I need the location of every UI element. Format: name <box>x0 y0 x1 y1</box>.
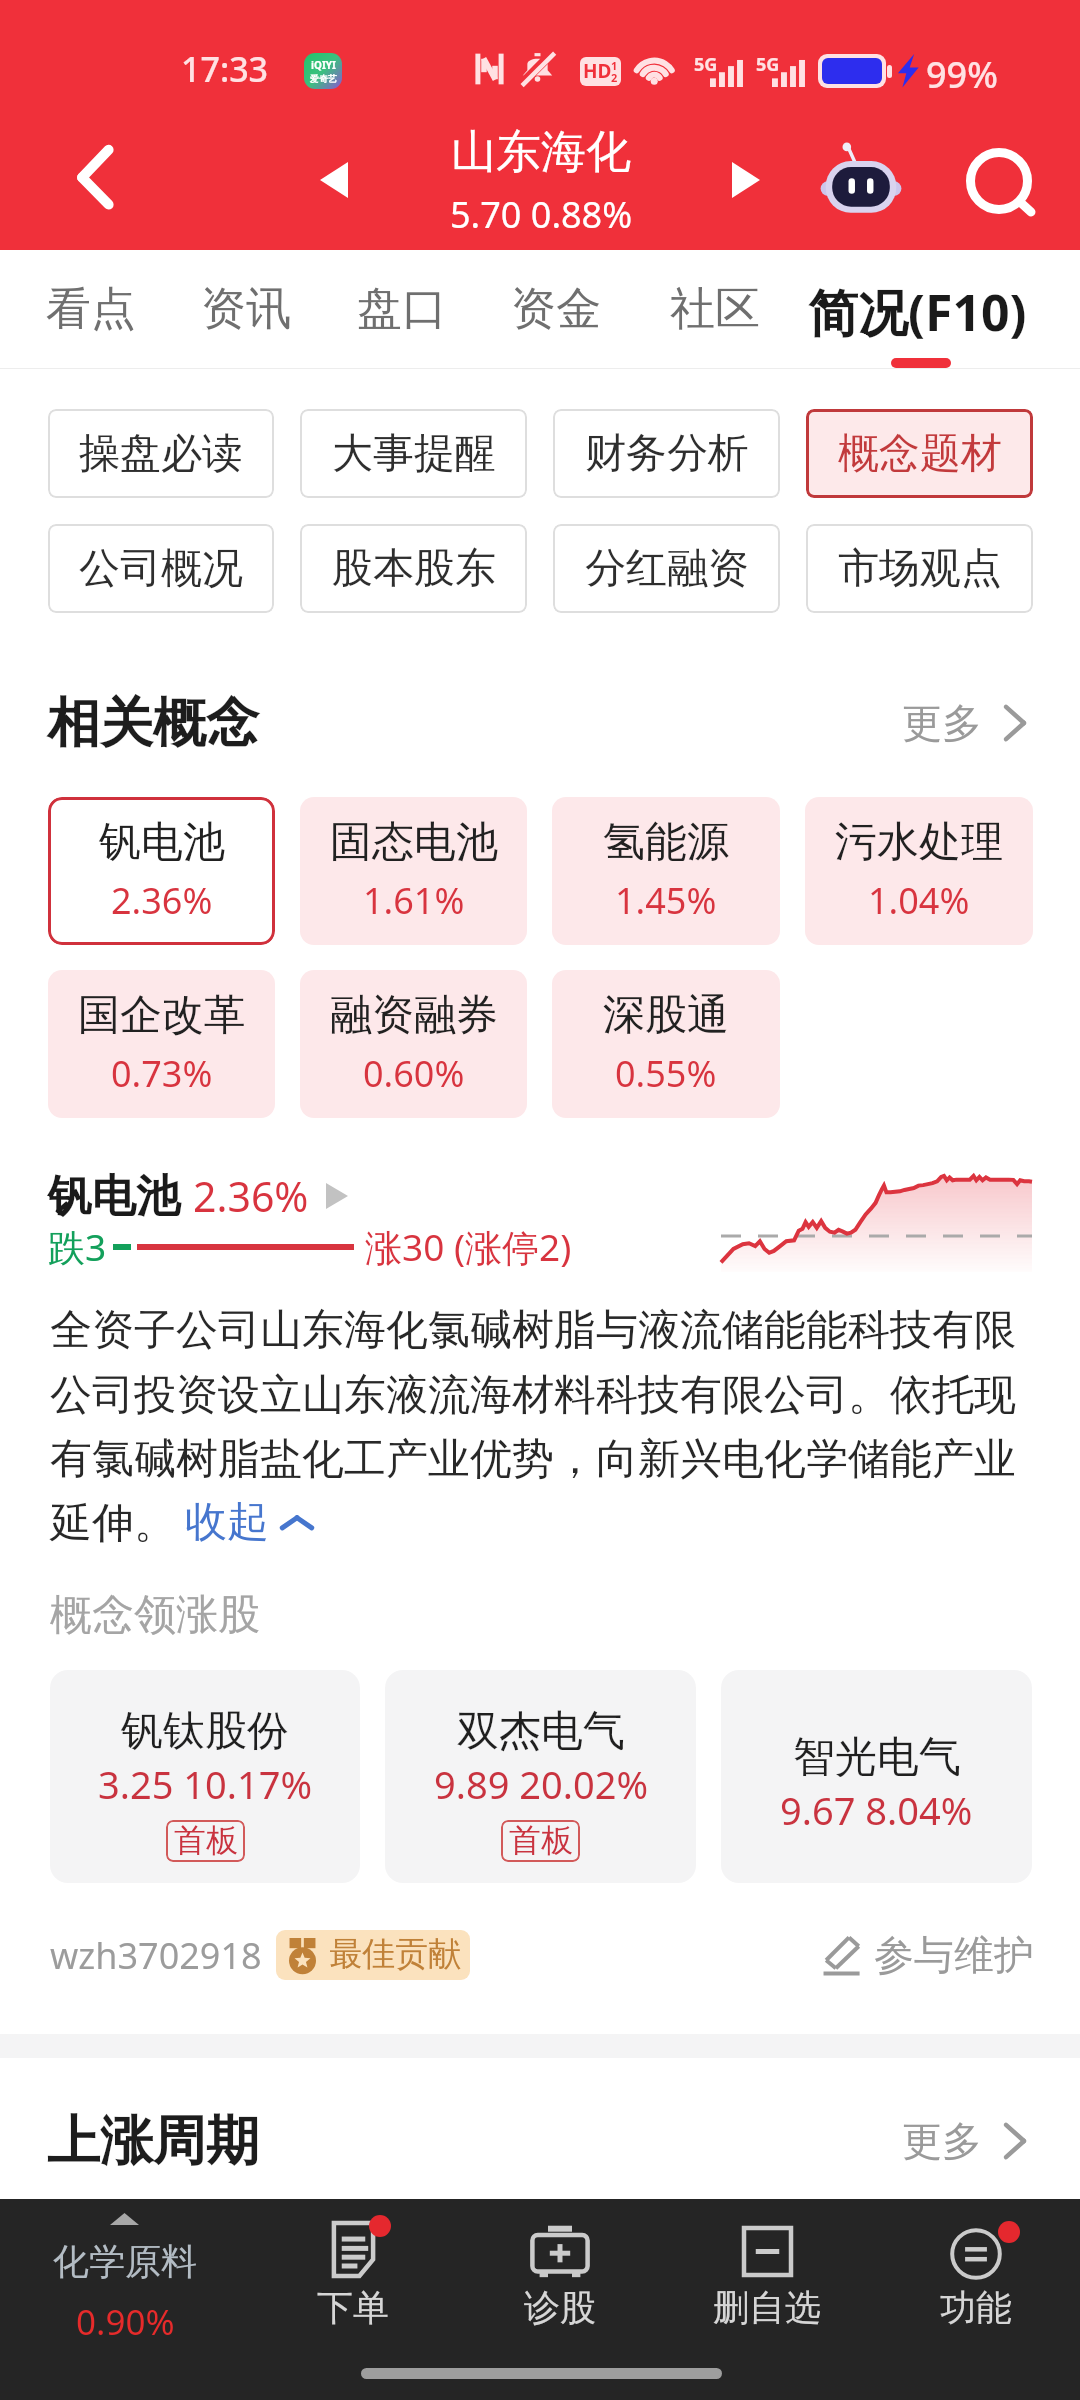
staticText: 盘口 <box>357 281 447 338</box>
button[interactable]: 资讯 <box>188 250 303 369</box>
staticText: 2.36% <box>193 1168 309 1224</box>
staticText: 双杰电气 <box>457 1705 625 1758</box>
staticText: 0.55% <box>615 1049 717 1098</box>
staticText: 财务分析 <box>585 428 749 480</box>
staticText: 爱奇艺 <box>310 73 337 84</box>
button[interactable]: Back <box>30 110 160 250</box>
staticText: 2 <box>611 70 618 85</box>
staticText: 市场观点 <box>838 543 1002 595</box>
staticText: 融资融券 <box>330 989 498 1042</box>
staticText: 深股通 <box>603 989 729 1042</box>
staticText: 首板 <box>174 1820 238 1860</box>
button[interactable]: 公司概况 <box>48 524 274 613</box>
button[interactable]: AI assistant <box>806 110 916 250</box>
staticText: 17:33 <box>181 46 269 92</box>
button[interactable]: 更多 <box>892 682 1037 764</box>
button[interactable]: Previous stock <box>292 110 376 250</box>
staticText: 资讯 <box>201 281 291 338</box>
button[interactable]: Functions <box>891 2199 1061 2349</box>
staticText: 分红融资 <box>585 543 749 595</box>
button[interactable]: 智光电气 <box>721 1670 1032 1883</box>
button[interactable]: 概念题材 <box>806 409 1033 498</box>
button[interactable]: 钒电池 <box>48 797 275 945</box>
staticText: 看点 <box>46 281 136 338</box>
button[interactable]: Diagnose stock <box>475 2199 645 2349</box>
button[interactable]: 固态电池 <box>300 797 527 945</box>
button[interactable]: 参与维护 <box>820 1930 1034 1980</box>
staticText: 1 <box>611 58 618 73</box>
button[interactable]: Place order <box>268 2199 438 2349</box>
staticText: 更多 <box>902 698 982 748</box>
button[interactable]: 操盘必读 <box>48 409 274 498</box>
staticText: 3.25 10.17% <box>98 1758 312 1810</box>
staticText: 固态电池 <box>330 816 498 869</box>
staticText: 概念题材 <box>838 428 1002 480</box>
staticText: 2.36% <box>111 876 213 925</box>
button[interactable]: 融资融券 <box>300 970 527 1118</box>
button[interactable]: 深股通 <box>552 970 780 1118</box>
staticText: 5.70 0.88% <box>450 190 633 239</box>
button[interactable]: 污水处理 <box>805 797 1033 945</box>
staticText: 跌3 <box>48 1221 107 1272</box>
staticText: 参与维护 <box>874 1930 1034 1980</box>
staticText: 钒电池 <box>99 816 225 869</box>
staticText: 相关概念 <box>47 690 259 757</box>
staticText: 1.04% <box>868 876 970 925</box>
staticText: 操盘必读 <box>79 428 243 480</box>
staticText: 0.73% <box>111 1049 213 1098</box>
button[interactable]: 收起 <box>185 1496 313 1549</box>
button[interactable]: 国企改革 <box>48 970 275 1118</box>
staticText: HD <box>583 58 612 84</box>
staticText: 1.45% <box>615 876 717 925</box>
staticText: 污水处理 <box>835 816 1003 869</box>
button[interactable]: 资金 <box>498 250 613 369</box>
button[interactable]: 双杰电气 <box>385 1670 696 1883</box>
staticText: 大事提醒 <box>332 428 496 480</box>
staticText: 9.89 20.02% <box>434 1758 648 1810</box>
staticText: 概念领涨股 <box>50 1589 260 1642</box>
button[interactable]: 最佳贡献 <box>289 1930 461 1980</box>
button[interactable]: Search <box>936 110 1060 250</box>
staticText: 9.67 8.04% <box>780 1784 973 1836</box>
staticText: wzh3702918 <box>50 1931 262 1980</box>
button[interactable]: 市场观点 <box>806 524 1033 613</box>
button[interactable]: 财务分析 <box>553 409 780 498</box>
staticText: 5G <box>694 52 718 77</box>
staticText: 全资子公司山东海化氯碱树脂与液流储能能科技有限公司投资设立山东液流海材料科技有限… <box>50 1304 1032 1549</box>
staticText: 功能 <box>940 2285 1012 2330</box>
staticText: 氢能源 <box>603 816 729 869</box>
button[interactable]: 分红融资 <box>553 524 780 613</box>
staticText: 钒电池 <box>48 1169 180 1224</box>
button[interactable]: 氢能源 <box>552 797 780 945</box>
staticText: 99% <box>926 50 998 99</box>
staticText: 0.90% <box>76 2298 175 2346</box>
button[interactable]: 看点 <box>33 250 148 369</box>
button[interactable]: Next stock <box>704 110 788 250</box>
staticText: 智光电气 <box>793 1731 961 1784</box>
staticText: 化学原料 <box>53 2239 197 2284</box>
staticText: 最佳贡献 <box>329 1933 461 1975</box>
button[interactable]: 简况(F10) <box>795 250 1045 369</box>
staticText: 1.61% <box>363 876 465 925</box>
button[interactable]: 股本股东 <box>300 524 527 613</box>
staticText: 下单 <box>317 2285 389 2330</box>
staticText: 更多 <box>902 2116 982 2166</box>
staticText: 股本股东 <box>332 543 496 595</box>
staticText: 国企改革 <box>78 989 246 1042</box>
staticText: 钒钛股份 <box>121 1705 289 1758</box>
button[interactable]: 化学原料 <box>0 2199 250 2400</box>
button[interactable]: 更多 <box>892 2100 1037 2182</box>
button[interactable]: 钒钛股份 <box>50 1670 360 1883</box>
staticText: 首板 <box>509 1820 573 1860</box>
staticText: 上涨周期 <box>47 2108 259 2175</box>
staticText: 删自选 <box>713 2285 821 2330</box>
staticText: 简况(F10) <box>808 278 1027 346</box>
button[interactable]: 社区 <box>657 250 772 369</box>
button[interactable]: 大事提醒 <box>300 409 527 498</box>
staticText: 公司概况 <box>79 543 243 595</box>
button[interactable]: Remove from watchlist <box>682 2199 852 2349</box>
button[interactable]: 盘口 <box>344 250 459 369</box>
staticText: 资金 <box>511 281 601 338</box>
staticText: 收起 <box>185 1496 269 1549</box>
staticText: iQIYI <box>311 58 336 72</box>
